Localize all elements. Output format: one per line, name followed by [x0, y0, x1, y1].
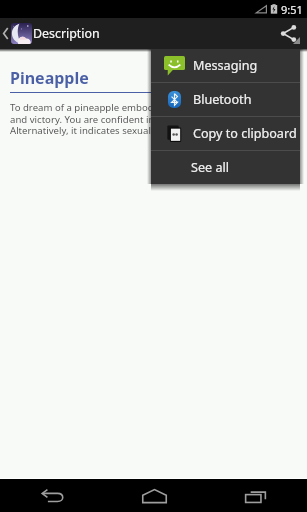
staticText: Pineapple	[10, 67, 89, 89]
staticText: See all	[191, 159, 229, 176]
button[interactable]: Bluetooth	[151, 83, 300, 116]
staticText: To dream of a pineapple embodies confide…	[10, 101, 224, 137]
staticText: Bluetooth	[193, 91, 252, 108]
button[interactable]: Description	[0, 18, 100, 49]
staticText: Messaging	[193, 57, 258, 74]
button[interactable]: See all	[151, 151, 300, 184]
button[interactable]: Messaging	[151, 49, 300, 82]
staticText: Description	[33, 25, 100, 42]
button[interactable]: Back	[3, 479, 101, 512]
button[interactable]: Share	[272, 18, 307, 49]
staticText: 9:51	[281, 2, 303, 17]
button[interactable]: Recents	[206, 479, 304, 512]
button[interactable]: Copy to clipboard	[151, 117, 300, 150]
button[interactable]: Home	[105, 479, 203, 512]
staticText: Copy to clipboard	[193, 125, 297, 142]
